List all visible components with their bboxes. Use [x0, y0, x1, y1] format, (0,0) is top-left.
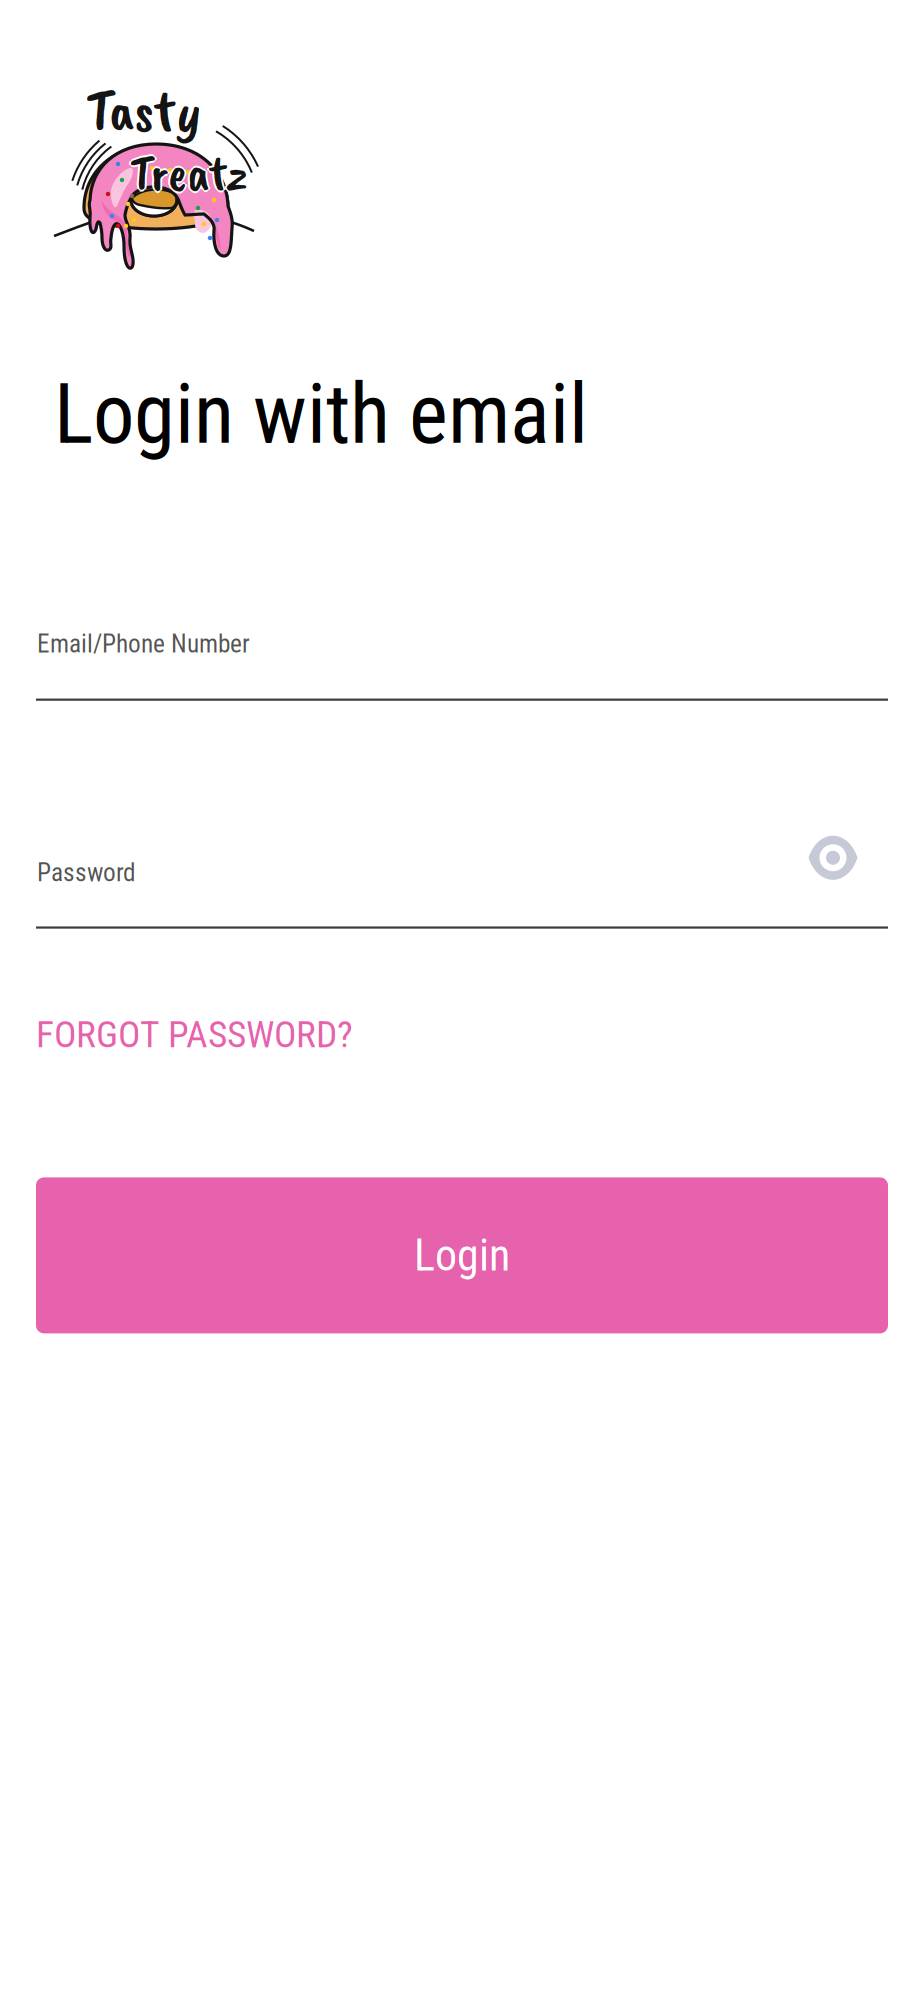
button[interactable]: Password	[0, 827, 924, 929]
button[interactable]: FORGOT PASSWORD?	[36, 1013, 353, 1056]
button[interactable]: Login	[36, 1177, 888, 1333]
staticText: Email/Phone Number	[37, 629, 250, 659]
button[interactable]: Show password	[797, 827, 869, 889]
staticText: Treatz	[130, 140, 248, 202]
staticText: Login with email	[54, 366, 588, 463]
staticText: Password	[37, 858, 136, 887]
button[interactable]: Email/Phone Number	[0, 629, 924, 701]
staticText: Treatz	[130, 144, 248, 206]
staticText: FORGOT PASSWORD?	[36, 1013, 353, 1056]
staticText: Tasty	[86, 74, 200, 148]
staticText: Login	[414, 1230, 510, 1281]
staticText: Treatz	[130, 142, 248, 204]
staticText: Treatz	[128, 142, 246, 204]
staticText: Treatz	[132, 142, 250, 204]
